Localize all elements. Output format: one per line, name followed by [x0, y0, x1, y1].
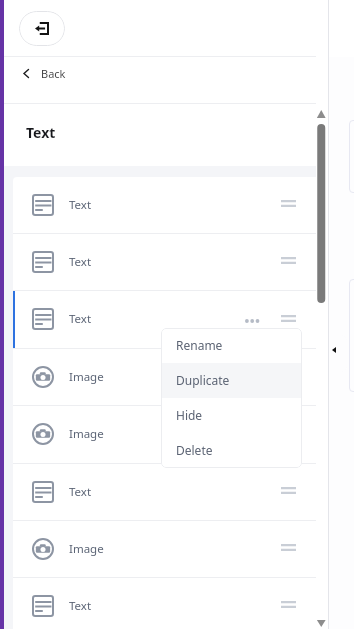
staticText: Text	[69, 598, 92, 614]
staticText: Text	[69, 197, 92, 213]
button[interactable]: Image	[13, 406, 329, 464]
staticText: Delete	[176, 442, 213, 458]
button[interactable]: Text	[13, 291, 329, 349]
staticText: Back	[41, 66, 66, 81]
button[interactable]: Text	[13, 234, 329, 291]
staticText: Image	[69, 541, 104, 557]
staticText: Text	[26, 123, 56, 142]
button[interactable]: Back	[0, 57, 316, 103]
button[interactable]: Collapse panel	[329, 335, 347, 372]
staticText: Text	[69, 254, 92, 270]
button[interactable]: Duplicate	[161, 363, 302, 398]
staticText: Image	[69, 369, 104, 385]
button[interactable]: Text	[13, 578, 329, 629]
staticText: Rename	[176, 337, 223, 353]
button[interactable]: Delete	[161, 433, 302, 468]
staticText: Image	[69, 426, 104, 442]
staticText: Duplicate	[176, 372, 230, 388]
button[interactable]: Rename	[161, 328, 302, 363]
button[interactable]: Text	[13, 464, 329, 521]
button[interactable]: Image	[13, 521, 329, 578]
staticText: Hide	[176, 407, 203, 423]
button[interactable]: Hide	[161, 398, 302, 433]
staticText: Text	[69, 311, 92, 327]
staticText: Text	[69, 484, 92, 500]
button[interactable]: Log out	[19, 11, 65, 46]
button[interactable]: Text	[13, 177, 329, 234]
button[interactable]: Image	[13, 349, 329, 406]
